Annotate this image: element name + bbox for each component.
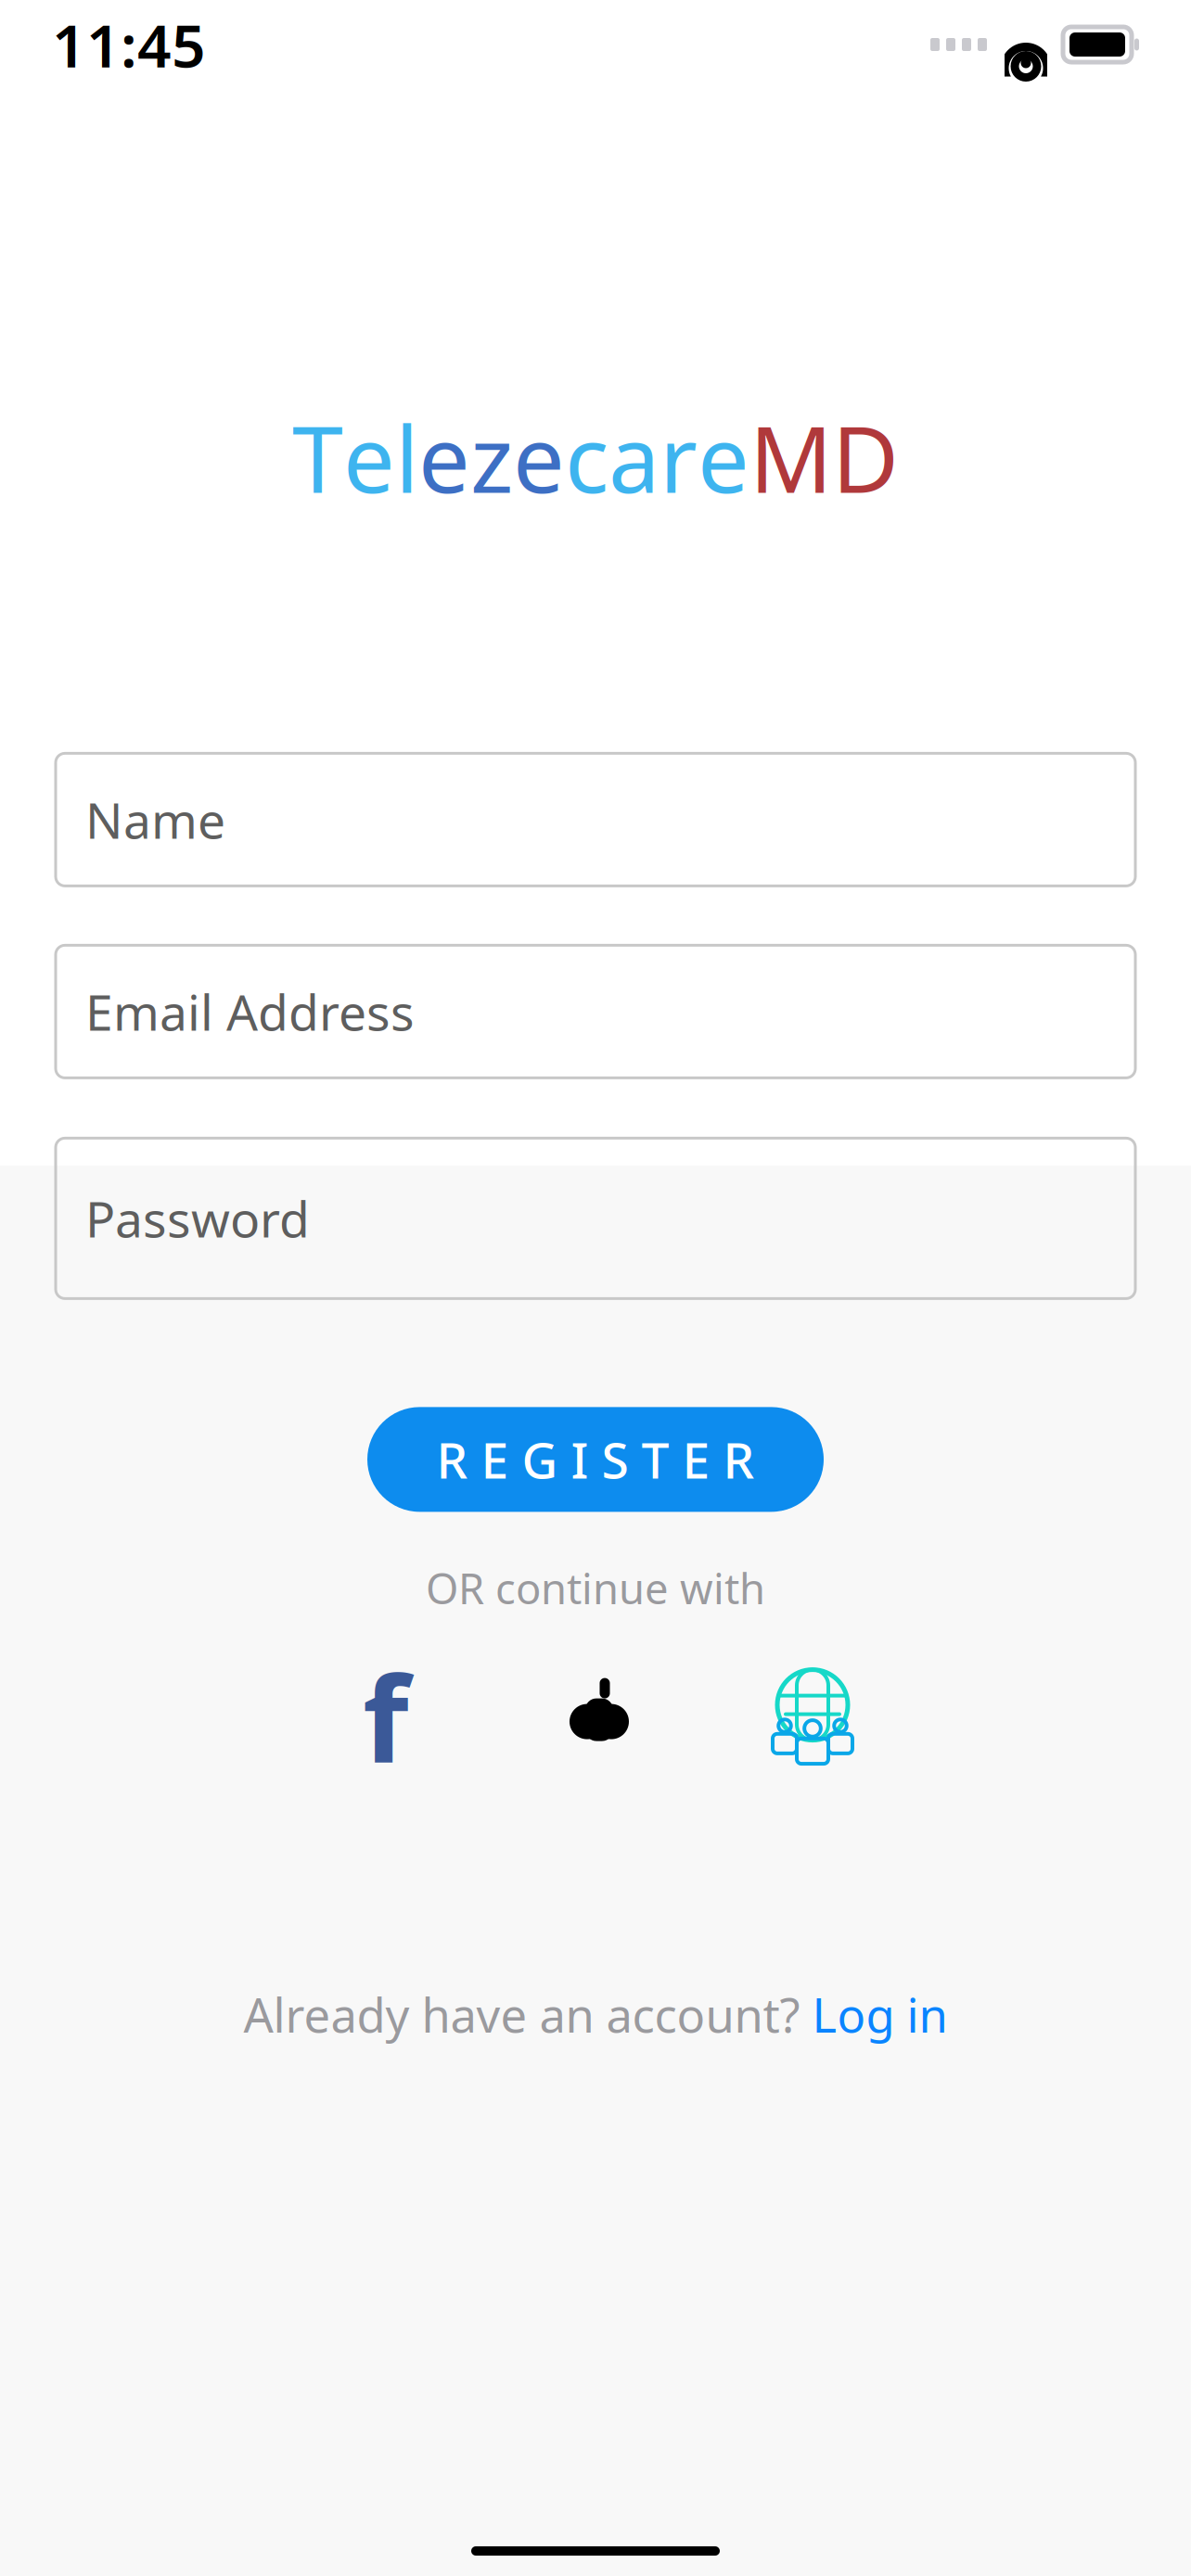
button[interactable]: R E G I S T E R (367, 1407, 824, 1512)
staticText: R E G I S T E R (436, 1427, 755, 1492)
staticText: Password (85, 1186, 310, 1251)
button[interactable]: Continue with Apple (544, 1660, 655, 1772)
staticText: T (292, 395, 343, 520)
staticText: z (470, 395, 513, 520)
button[interactable]: Continue with Telezecare network (757, 1660, 868, 1772)
staticText: f (363, 1637, 409, 1795)
staticText: Email Address (85, 979, 415, 1044)
staticText: e (698, 395, 749, 520)
staticText: Log in (812, 1983, 948, 2045)
staticText: MD (749, 395, 899, 520)
staticText: e (418, 395, 470, 520)
button[interactable]: Log in (812, 1983, 948, 2045)
staticText: c (565, 395, 608, 520)
staticText: e (343, 395, 395, 520)
staticText: 11:45 (52, 5, 206, 84)
staticText: Already have an account? (243, 1983, 812, 2045)
staticText: a (608, 395, 660, 520)
staticText: e (513, 395, 565, 520)
staticText: l (395, 395, 418, 520)
staticText: OR continue with (426, 1560, 765, 1616)
staticText: Name (85, 787, 225, 852)
staticText: r (660, 395, 698, 520)
button[interactable]: Continue with Facebook (330, 1660, 442, 1772)
